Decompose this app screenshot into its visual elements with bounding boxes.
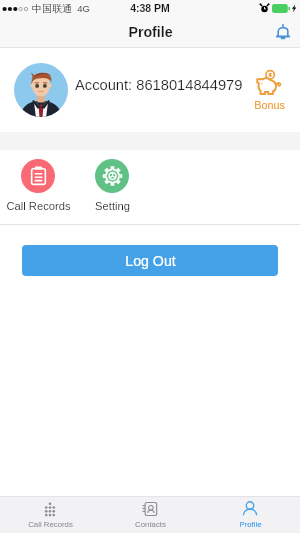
staticText: 4:38 PM bbox=[130, 2, 170, 14]
button[interactable]: Contacts bbox=[100, 497, 200, 533]
button[interactable]: Bonus bbox=[249, 70, 290, 111]
staticText: Account: 8618014844979 bbox=[75, 77, 252, 93]
button[interactable]: Log Out bbox=[22, 245, 278, 276]
button[interactable]: Notifications bbox=[271, 20, 295, 44]
staticText: Log Out bbox=[125, 253, 176, 269]
button[interactable]: Call Records bbox=[6, 159, 70, 213]
staticText: Setting bbox=[95, 200, 130, 213]
staticText: Call Records bbox=[28, 520, 73, 529]
staticText: 中国联通 bbox=[32, 2, 72, 15]
button[interactable] bbox=[14, 63, 68, 117]
button[interactable]: Call Records bbox=[0, 497, 100, 533]
staticText: Bonus bbox=[254, 99, 285, 111]
staticText: Contacts bbox=[135, 520, 166, 529]
staticText: Call Records bbox=[6, 200, 70, 213]
staticText: Profile bbox=[239, 520, 262, 529]
staticText: 4G bbox=[77, 3, 90, 14]
staticText: Profile bbox=[128, 24, 173, 40]
button[interactable]: Setting bbox=[80, 159, 144, 213]
button[interactable]: Profile bbox=[200, 497, 300, 533]
